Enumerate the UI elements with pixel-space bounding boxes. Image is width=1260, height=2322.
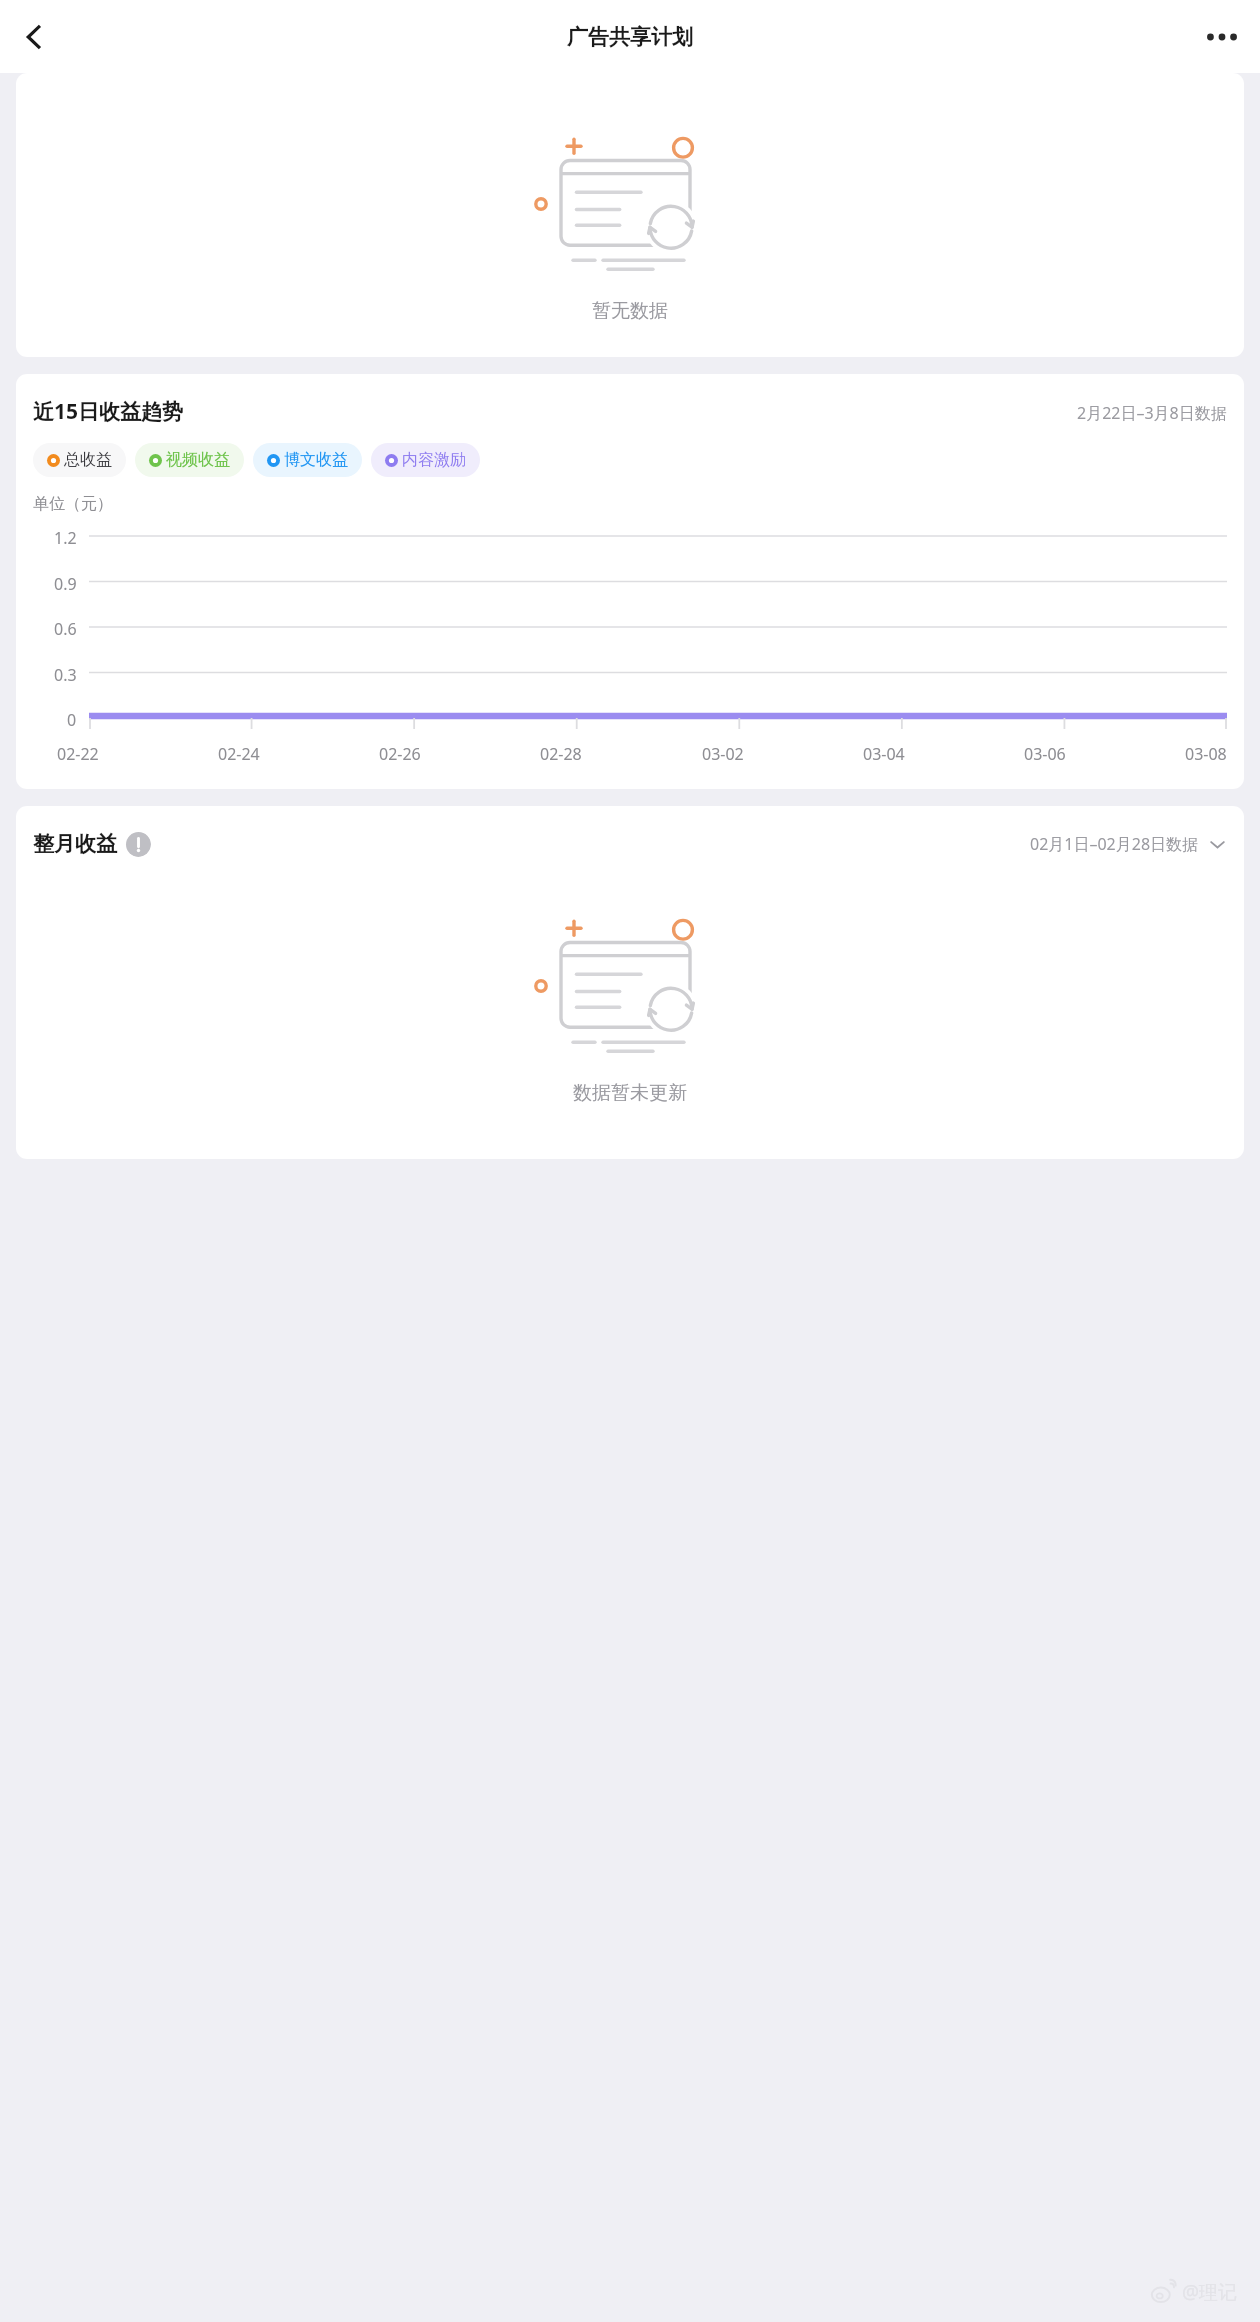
button[interactable]: 视频收益 [135,443,244,477]
staticText: 广告共享计划 [567,24,693,50]
button[interactable]: 内容激励 [371,443,480,477]
staticText: 02-24 [218,743,260,765]
staticText: 数据暂未更新 [573,1081,687,1105]
staticText: 单位（元） [33,494,113,514]
staticText: 暂无数据 [592,299,668,323]
staticText: 近15日收益趋势 [33,397,184,426]
staticText: 总收益 [64,450,112,470]
staticText: 视频收益 [166,450,230,470]
button[interactable]: 02月1日–02月28日数据 [1028,829,1227,859]
staticText: 03-06 [1024,743,1066,765]
staticText: 0.6 [54,618,77,636]
staticText: 1.2 [54,527,77,545]
staticText: 0.9 [54,573,77,591]
staticText: 02-28 [540,743,582,765]
staticText: 03-04 [863,743,905,765]
staticText: 0 [67,709,77,727]
staticText: 0.3 [54,664,77,682]
staticText: 整月收益 [33,831,117,857]
staticText: 博文收益 [284,450,348,470]
button[interactable]: 博文收益 [253,443,362,477]
button[interactable]: More options [1196,11,1248,63]
staticText: 内容激励 [402,450,466,470]
staticText: 03-08 [1185,743,1227,765]
staticText: 02-26 [379,743,421,765]
button[interactable]: 说明 [125,831,151,857]
button[interactable]: Back [8,11,60,63]
staticText: 02-22 [57,743,99,765]
staticText: 2月22日–3月8日数据 [1077,402,1227,424]
staticText: @理记 [1182,2279,1238,2305]
button[interactable]: 总收益 [33,443,126,477]
staticText: 02月1日–02月28日数据 [1030,833,1199,855]
staticText: 03-02 [702,743,744,765]
